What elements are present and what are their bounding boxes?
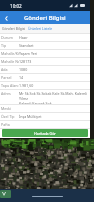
button[interactable]: Ürünleri Listele (27, 24, 54, 33)
staticText: Özel Tip (1, 114, 19, 119)
staticText: Hazır (19, 35, 28, 40)
staticText: Standart (19, 43, 34, 48)
button[interactable]: Mahalle No (0, 58, 90, 66)
button[interactable]: Özel Tip (0, 113, 90, 121)
staticText: 1080 (19, 67, 28, 72)
staticText: Mahalle No (1, 59, 19, 64)
staticText: Gönderi Bilgisi (24, 14, 66, 22)
button[interactable]: Gönderi Bilgisi (0, 24, 27, 33)
staticText: Parsel (1, 75, 19, 80)
button[interactable]: Tapu Alanı (0, 82, 90, 90)
staticText: Mr Sk.Sok Sk.Sokak Kale Sk.Mah. Kalemli … (19, 91, 88, 104)
staticText: Adres (1, 91, 19, 96)
staticText: Ürünleri Listele (28, 26, 53, 31)
button[interactable]: Adres (0, 90, 90, 105)
staticText: Gönderi Bilgisi (2, 26, 26, 31)
staticText: Mevki (1, 106, 19, 111)
button[interactable]: Parsel (0, 74, 90, 82)
button[interactable]: Durum (0, 34, 90, 42)
staticText: 128173 (19, 59, 32, 64)
staticText: 10:02 (10, 3, 22, 9)
button[interactable]: App logo (0, 190, 11, 198)
staticText: Yaşam Yeri (19, 51, 38, 56)
staticText: 1.981,60 (19, 83, 34, 88)
button[interactable]: Tip (0, 42, 90, 50)
button[interactable]: Mevki (0, 105, 90, 113)
button[interactable]: Pafta (0, 121, 90, 129)
button[interactable]: Back (0, 12, 12, 24)
staticText: Durum (1, 35, 19, 40)
button[interactable]: Haritada Gör (2, 129, 88, 137)
staticText: Tip (1, 43, 19, 48)
staticText: 14 (19, 75, 24, 80)
staticText: Pafta (1, 122, 19, 127)
staticText: Ada (1, 67, 19, 72)
staticText: Mahalle/Köy (1, 51, 19, 56)
button[interactable]: Ada (0, 66, 90, 74)
staticText: Tapu Alanı (1, 83, 19, 88)
staticText: İnşa Mülkiyet (19, 114, 42, 119)
button[interactable]: Mahalle/Köy (0, 50, 90, 58)
staticText: Haritada Gör (34, 131, 56, 136)
